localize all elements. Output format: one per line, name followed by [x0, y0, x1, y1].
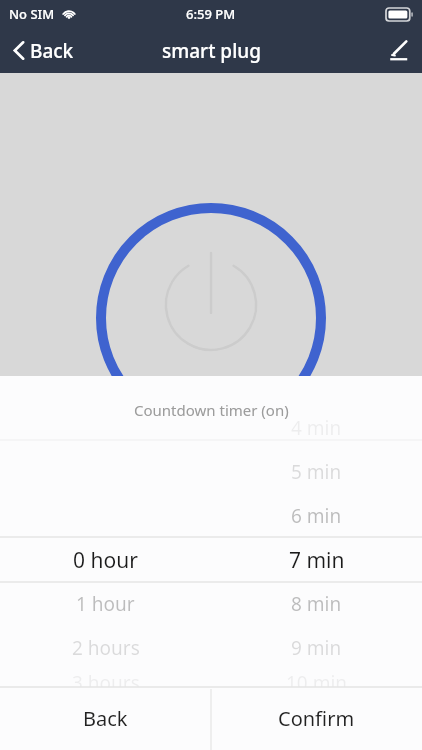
- staticText: smart plug: [162, 38, 261, 64]
- button[interactable]: Back: [0, 28, 88, 73]
- button[interactable]: Back: [0, 687, 211, 750]
- staticText: 4 min: [291, 415, 342, 441]
- staticText: 9 min: [291, 635, 342, 661]
- staticText: 7 min: [289, 546, 345, 575]
- staticText: Countdown timer (on): [134, 400, 289, 420]
- staticText: 1 hour: [76, 591, 135, 617]
- staticText: Back: [83, 705, 128, 732]
- staticText: 0 hour: [73, 546, 138, 575]
- staticText: 2 hours: [72, 635, 140, 661]
- staticText: 8 min: [291, 591, 342, 617]
- button[interactable]: 0 hour: [0, 376, 211, 687]
- staticText: 3 hours: [72, 670, 140, 687]
- staticText: Back: [30, 38, 74, 64]
- staticText: 6 min: [291, 503, 342, 529]
- button[interactable]: 4 min: [211, 376, 422, 687]
- staticText: 6:59 PM: [186, 5, 236, 23]
- staticText: Confirm: [278, 705, 355, 732]
- staticText: 5 min: [291, 459, 342, 485]
- staticText: No SIM: [9, 5, 55, 23]
- button[interactable]: Edit: [374, 28, 422, 73]
- staticText: 10 min: [286, 670, 348, 687]
- button[interactable]: Confirm: [211, 687, 422, 750]
